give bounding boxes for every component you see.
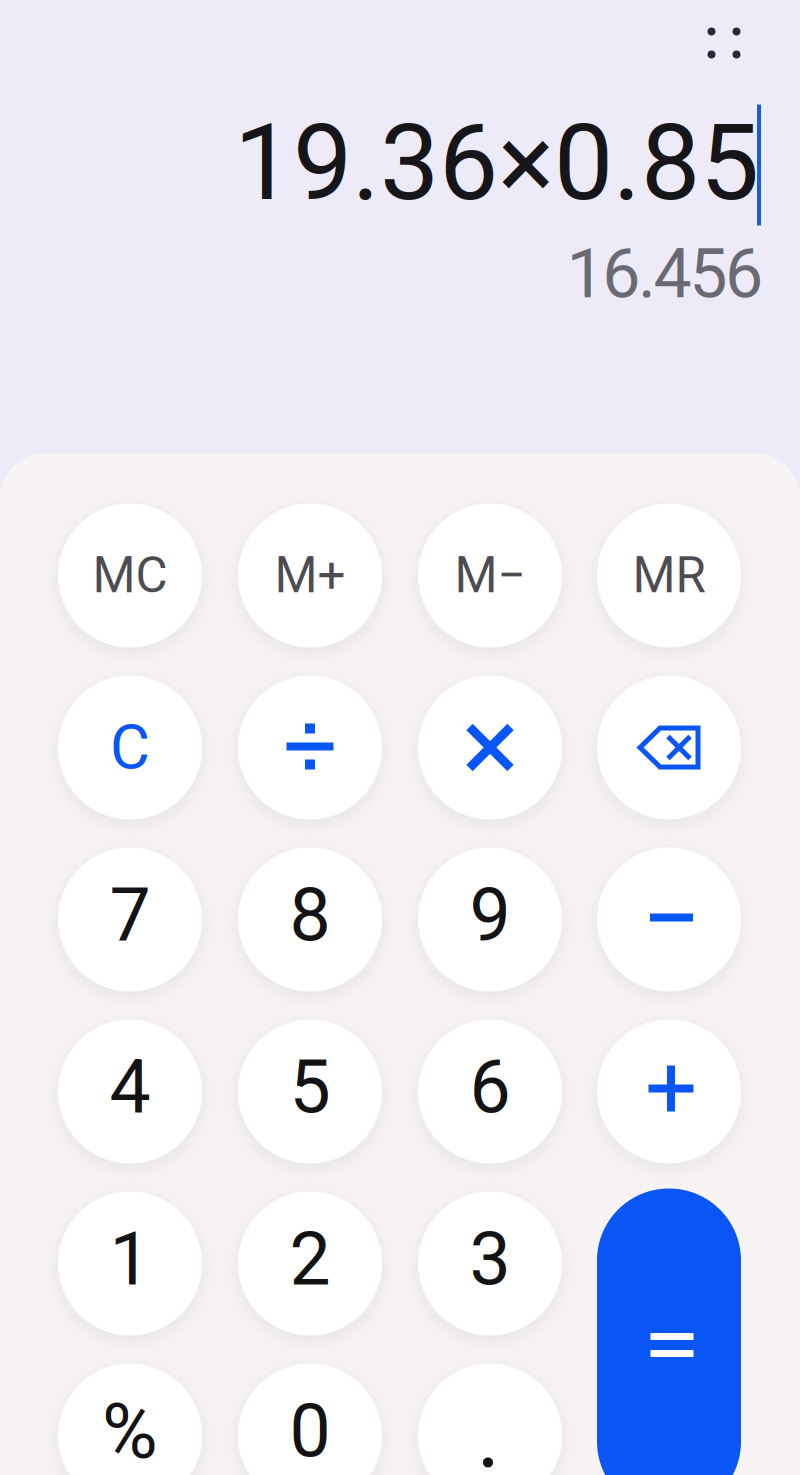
- button[interactable]: 1: [0, 0, 800, 1475]
- button[interactable]: 6: [0, 0, 800, 1475]
- staticText: 2: [289, 1216, 330, 1302]
- button[interactable]: MR: [0, 0, 800, 1475]
- staticText: 0: [289, 1388, 330, 1474]
- button[interactable]: 9: [0, 0, 800, 1475]
- button[interactable]: Decimal point: [0, 0, 800, 1475]
- button[interactable]: 2: [0, 0, 800, 1475]
- button[interactable]: Delete: [0, 0, 800, 1475]
- staticText: 4: [109, 1044, 150, 1130]
- staticText: %: [102, 1387, 158, 1475]
- staticText: M+: [274, 547, 345, 604]
- button[interactable]: 8: [0, 0, 800, 1475]
- staticText: C: [110, 712, 150, 783]
- button[interactable]: MC: [0, 0, 800, 1475]
- button[interactable]: 3: [0, 0, 800, 1475]
- button[interactable]: Multiply: [0, 0, 800, 1475]
- button[interactable]: C: [0, 0, 800, 1475]
- button[interactable]: M−: [0, 0, 800, 1475]
- button[interactable]: Plus: [0, 0, 800, 1475]
- button[interactable]: Minus: [0, 0, 800, 1475]
- button[interactable]: Divide: [0, 0, 800, 1475]
- button[interactable]: 4: [0, 0, 800, 1475]
- button[interactable]: 0: [0, 0, 800, 1475]
- staticText: 1: [109, 1216, 150, 1302]
- button[interactable]: Equals: [0, 0, 800, 1475]
- staticText: 3: [469, 1216, 510, 1302]
- staticText: 19.36×0.85: [234, 101, 759, 225]
- staticText: 16.456: [566, 234, 763, 314]
- button[interactable]: More options: [0, 0, 800, 1475]
- staticText: M−: [454, 547, 525, 604]
- staticText: MR: [632, 547, 705, 604]
- button[interactable]: %: [0, 0, 800, 1475]
- staticText: 5: [289, 1044, 330, 1130]
- button[interactable]: 5: [0, 0, 800, 1475]
- staticText: MC: [92, 547, 167, 604]
- button[interactable]: 7: [0, 0, 800, 1475]
- staticText: 7: [109, 872, 150, 958]
- button[interactable]: M+: [0, 0, 800, 1475]
- staticText: 9: [469, 872, 510, 958]
- staticText: 8: [289, 872, 330, 958]
- staticText: 6: [469, 1044, 510, 1130]
